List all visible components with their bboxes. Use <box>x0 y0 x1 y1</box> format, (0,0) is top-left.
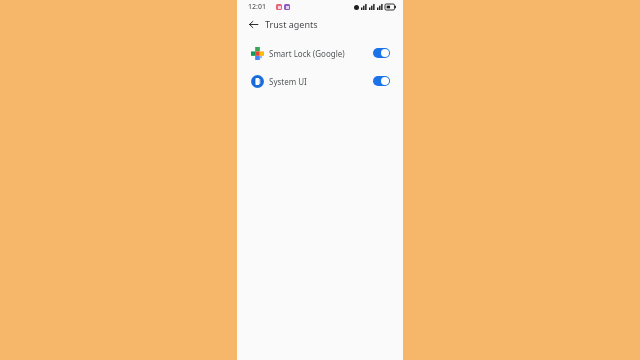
staticText: Smart Lock (Google) <box>269 48 373 59</box>
staticText: System UI <box>269 76 373 87</box>
staticText: 12:01 <box>248 2 266 12</box>
button[interactable]: Back <box>244 15 262 33</box>
button[interactable]: Toggle <box>373 48 390 58</box>
button[interactable]: Smart Lock (Google) <box>237 39 403 67</box>
button[interactable]: System UI <box>237 67 403 95</box>
button[interactable]: Toggle <box>373 76 390 86</box>
staticText: Trust agents <box>265 18 318 30</box>
